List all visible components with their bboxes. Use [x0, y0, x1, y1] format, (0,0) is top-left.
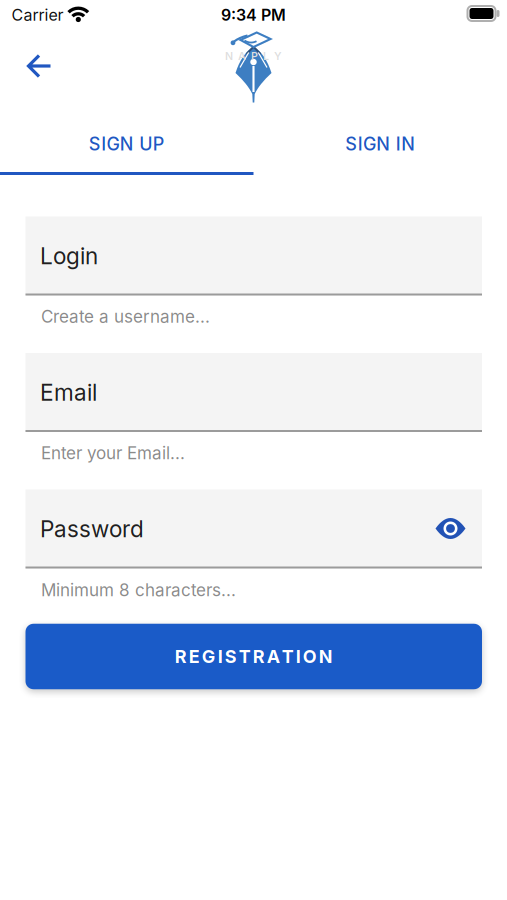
- staticText: Minimum 8 characters...: [41, 580, 236, 600]
- staticText: Carrier: [11, 5, 63, 25]
- staticText: 9:34 PM: [221, 5, 286, 25]
- button[interactable]: Login: [25, 216, 482, 295]
- button[interactable]: Password: [25, 489, 482, 568]
- staticText: SIGN UP: [89, 133, 165, 155]
- staticText: Email: [40, 379, 97, 406]
- button[interactable]: Email: [25, 353, 482, 432]
- staticText: Enter your Email...: [41, 443, 185, 463]
- button[interactable]: SIGN UP: [0, 115, 253, 173]
- button[interactable]: Show password: [428, 506, 472, 550]
- staticText: Login: [40, 242, 98, 270]
- button[interactable]: Back: [19, 45, 59, 85]
- button[interactable]: R E G I S T R A T I O N: [25, 624, 482, 689]
- button[interactable]: SIGN IN: [253, 115, 507, 173]
- staticText: N A P L Y: [225, 49, 282, 62]
- staticText: R E G I S T R A T I O N: [175, 646, 333, 667]
- staticText: SIGN IN: [345, 133, 415, 155]
- staticText: Create a username...: [41, 306, 210, 327]
- staticText: Password: [40, 515, 144, 543]
